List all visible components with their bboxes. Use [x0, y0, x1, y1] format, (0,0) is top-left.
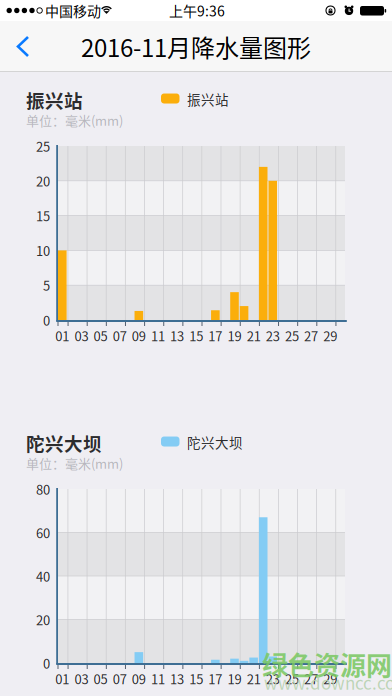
- staticText: 20: [36, 610, 50, 629]
- staticText: 单位：毫米(mm): [26, 454, 123, 472]
- staticText: 25: [285, 669, 299, 688]
- staticText: 25: [36, 137, 50, 155]
- staticText: 23: [266, 326, 280, 345]
- staticText: 0: [43, 654, 50, 672]
- staticText: 29: [323, 669, 337, 688]
- staticText: 振兴站: [26, 87, 83, 113]
- staticText: 29: [323, 326, 337, 345]
- staticText: 05: [94, 326, 108, 345]
- staticText: 80: [36, 480, 50, 498]
- staticText: 13: [170, 669, 184, 688]
- staticText: 09: [132, 669, 146, 688]
- staticText: 03: [74, 669, 88, 688]
- staticText: 23: [266, 669, 280, 688]
- staticText: 01: [55, 669, 69, 688]
- staticText: 21: [247, 326, 261, 345]
- staticText: 19: [227, 669, 241, 688]
- staticText: 60: [36, 523, 50, 542]
- staticText: 陀兴大坝: [26, 430, 102, 456]
- staticText: 13: [170, 326, 184, 345]
- staticText: 19: [227, 326, 241, 345]
- staticText: 27: [304, 669, 318, 688]
- staticText: 振兴站: [187, 89, 229, 109]
- staticText: 陀兴大坝: [187, 432, 243, 452]
- staticText: 15: [189, 326, 203, 345]
- staticText: 中国移动: [45, 0, 101, 21]
- staticText: 10: [36, 241, 50, 260]
- staticText: 07: [113, 669, 127, 688]
- staticText: 17: [208, 669, 222, 688]
- staticText: 21: [247, 669, 261, 688]
- staticText: 01: [55, 326, 69, 345]
- staticText: 40: [36, 567, 50, 585]
- staticText: www.downcc.com: [264, 670, 392, 695]
- staticText: 15: [36, 206, 50, 225]
- staticText: 17: [208, 326, 222, 345]
- button[interactable]: Back: [2, 24, 46, 68]
- staticText: 25: [285, 326, 299, 345]
- staticText: 07: [113, 326, 127, 345]
- staticText: 5: [43, 276, 50, 295]
- staticText: 绿色资源网: [262, 645, 392, 683]
- staticText: 11: [151, 326, 165, 345]
- staticText: 单位：毫米(mm): [26, 111, 123, 129]
- staticText: 上午9:36: [169, 0, 225, 21]
- staticText: 03: [74, 326, 88, 345]
- staticText: 11: [151, 669, 165, 688]
- staticText: 09: [132, 326, 146, 345]
- staticText: 20: [36, 171, 50, 190]
- staticText: 27: [304, 326, 318, 345]
- staticText: 05: [94, 669, 108, 688]
- staticText: 15: [189, 669, 203, 688]
- staticText: 2016-11月降水量图形: [81, 29, 311, 64]
- staticText: 0: [43, 311, 50, 329]
